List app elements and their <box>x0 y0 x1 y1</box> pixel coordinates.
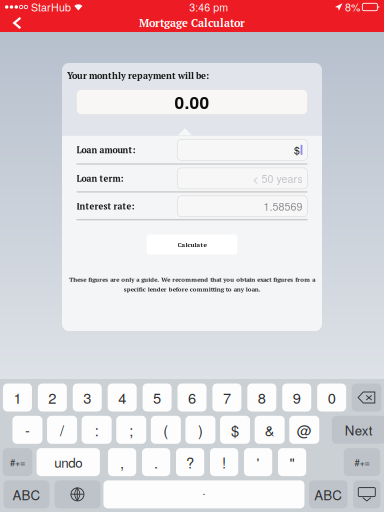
button[interactable]: ! <box>210 448 238 476</box>
staticText: - <box>25 419 30 440</box>
button[interactable]: . <box>142 448 170 476</box>
staticText: Loan amount: <box>77 144 136 156</box>
button[interactable]: space <box>103 480 304 508</box>
staticText: . <box>154 452 158 473</box>
staticText: / <box>60 419 64 440</box>
button[interactable]: , <box>108 448 136 476</box>
button[interactable]: ' <box>244 448 272 476</box>
staticText: 3:46 pm <box>189 0 228 15</box>
staticText: 4 <box>118 387 126 408</box>
staticText: ' <box>257 452 260 473</box>
staticText: $ <box>231 419 239 440</box>
staticText: ? <box>186 452 194 473</box>
button[interactable]: #+= <box>3 448 32 476</box>
staticText: StarHub <box>31 0 71 15</box>
button[interactable]: Hide keyboard <box>353 480 381 508</box>
staticText: @ <box>297 419 312 440</box>
staticText: ( <box>163 419 168 440</box>
staticText: 3 <box>83 387 91 408</box>
button[interactable]: ; <box>116 416 146 444</box>
button[interactable]: Calculate <box>147 234 237 254</box>
button[interactable]: Delete <box>352 383 381 411</box>
staticText: , <box>120 452 124 473</box>
button[interactable]: #+= <box>344 448 380 476</box>
staticText: $ <box>294 142 300 158</box>
staticText: Interest rate: <box>77 200 135 212</box>
staticText: #+= <box>354 455 369 469</box>
button[interactable]: 0 <box>317 383 346 411</box>
staticText: Loan term: <box>77 172 124 184</box>
staticText: 8 <box>258 387 266 408</box>
button[interactable]: undo <box>37 448 100 476</box>
staticText: 2 <box>48 387 56 408</box>
staticText: Your monthly repayment will be: <box>67 69 209 81</box>
button[interactable]: / <box>47 416 77 444</box>
staticText: 0 <box>328 387 336 408</box>
staticText: 6 <box>188 387 196 408</box>
staticText: ABC <box>314 485 342 504</box>
staticText: 7 <box>223 387 231 408</box>
button[interactable]: $ <box>220 416 250 444</box>
button[interactable]: 4 <box>108 383 137 411</box>
button[interactable]: ABC <box>3 480 49 508</box>
staticText: 8% <box>345 0 360 15</box>
button[interactable]: 2 <box>38 383 67 411</box>
staticText: " <box>290 452 295 473</box>
staticText: : <box>95 419 99 440</box>
staticText: Mortgage Calculator <box>139 16 245 30</box>
button[interactable]: ( <box>151 416 181 444</box>
staticText: 9 <box>293 387 301 408</box>
button[interactable]: ) <box>185 416 215 444</box>
staticText: #+= <box>10 455 25 469</box>
button[interactable]: : <box>82 416 112 444</box>
button[interactable]: 7 <box>212 383 241 411</box>
staticText: ) <box>198 419 203 440</box>
button[interactable]: 6 <box>177 383 206 411</box>
button[interactable]: Next <box>332 416 384 444</box>
button[interactable]: Back <box>3 14 32 32</box>
staticText: ; <box>129 419 133 440</box>
staticText: ! <box>222 452 226 473</box>
staticText: undo <box>54 453 82 472</box>
staticText: Calculate <box>177 240 206 249</box>
button[interactable]: ? <box>176 448 204 476</box>
button[interactable]: " <box>278 448 306 476</box>
staticText: < 50 years <box>252 171 302 186</box>
button[interactable]: - <box>12 416 42 444</box>
staticText: 1 <box>13 387 21 408</box>
button[interactable]: @ <box>289 416 319 444</box>
button[interactable]: 3 <box>73 383 102 411</box>
button[interactable]: ABC <box>309 480 348 508</box>
staticText: 1.58569 <box>263 199 302 214</box>
button[interactable]: 9 <box>282 383 311 411</box>
staticText: These figures are only a guide. We recom… <box>69 275 315 293</box>
staticText: ABC <box>12 485 40 504</box>
staticText: 5 <box>153 387 161 408</box>
button[interactable]: 5 <box>143 383 172 411</box>
button[interactable]: 8 <box>247 383 276 411</box>
button[interactable]: Next keyboard <box>54 480 100 508</box>
staticText: & <box>265 419 275 440</box>
button[interactable]: 1 <box>3 383 32 411</box>
button[interactable]: & <box>255 416 285 444</box>
staticText: 0.00 <box>174 90 209 114</box>
staticText: Next <box>345 420 373 439</box>
